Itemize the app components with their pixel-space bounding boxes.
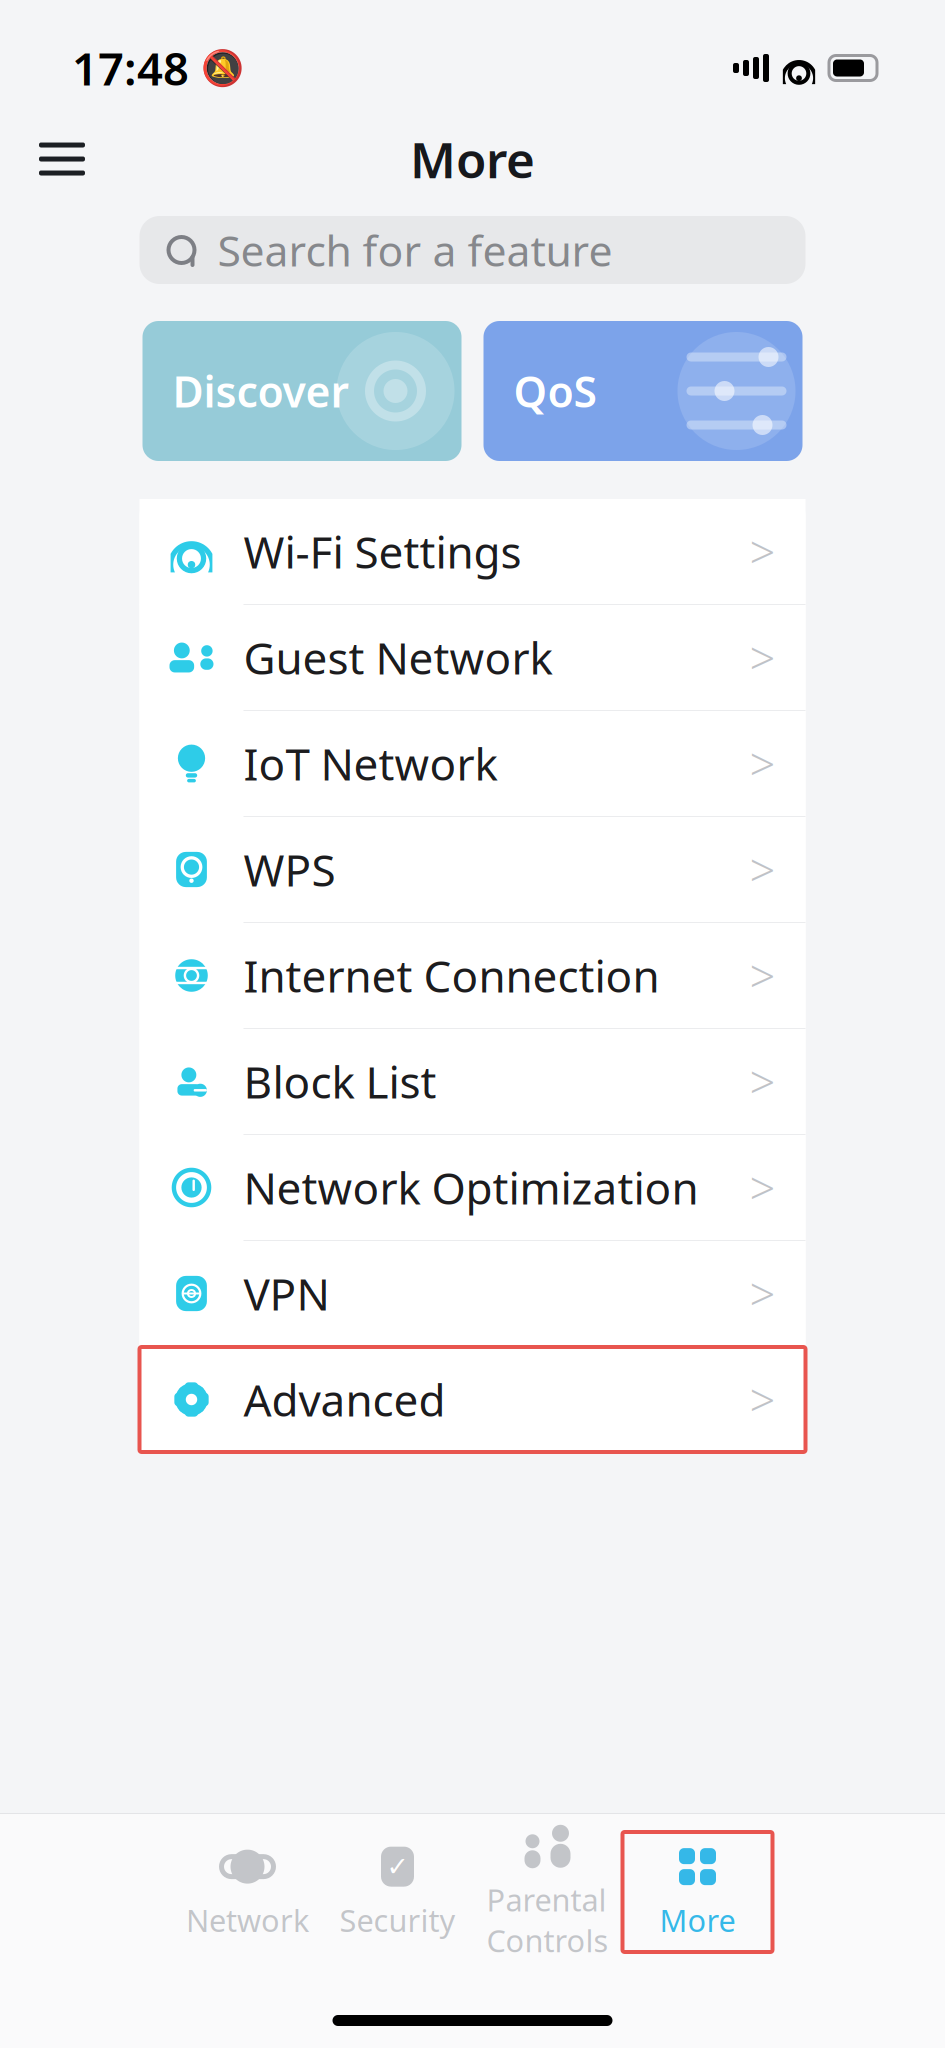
staticText: Block List <box>243 1052 436 1111</box>
staticText: Network Optimization <box>243 1158 698 1217</box>
staticText: Parental Controls <box>486 1879 608 1961</box>
staticText: > <box>749 1051 775 1112</box>
staticText: Network <box>186 1900 309 1940</box>
button[interactable]: Search for a feature <box>139 216 805 284</box>
staticText: Advanced <box>243 1370 445 1429</box>
staticText: > <box>749 521 775 582</box>
button[interactable]: Advanced <box>139 1347 805 1452</box>
button[interactable]: WPS <box>139 817 805 923</box>
staticText: ✓ <box>386 1851 408 1882</box>
staticText: Internet Connection <box>243 946 659 1005</box>
staticText: > <box>749 945 775 1006</box>
staticText: > <box>749 839 775 900</box>
staticText: > <box>749 1263 775 1324</box>
button[interactable]: Block List <box>139 1029 805 1135</box>
staticText: More <box>659 1900 735 1940</box>
button[interactable]: Wi-Fi Settings <box>139 499 805 605</box>
button[interactable]: QoS <box>483 321 802 461</box>
button[interactable]: Guest Network <box>139 605 805 711</box>
staticText: > <box>749 1369 775 1430</box>
staticText: > <box>749 627 775 688</box>
staticText: VPN <box>243 1264 329 1323</box>
button[interactable]: More <box>622 1832 772 1952</box>
staticText: IoT Network <box>243 734 497 793</box>
staticText: Guest Network <box>243 628 552 687</box>
button[interactable]: ✓ <box>322 1832 472 1952</box>
button[interactable]: VPN <box>139 1241 805 1347</box>
staticText: More <box>410 126 535 192</box>
staticText: Wi-Fi Settings <box>243 522 521 581</box>
button[interactable]: Parental Controls <box>472 1832 622 1952</box>
staticText: 17:48 <box>72 38 189 98</box>
staticText: 🔕 <box>201 48 244 88</box>
staticText: > <box>749 1157 775 1218</box>
button[interactable]: Discover <box>142 321 461 461</box>
staticText: Discover <box>172 363 349 419</box>
staticText: > <box>749 733 775 794</box>
button[interactable]: Internet Connection <box>139 923 805 1029</box>
button[interactable]: Menu <box>30 127 94 191</box>
staticText: Search for a feature <box>217 222 612 278</box>
staticText: WPS <box>243 840 335 899</box>
button[interactable]: Network Optimization <box>139 1135 805 1241</box>
button[interactable]: IoT Network <box>139 711 805 817</box>
button[interactable]: Network <box>172 1832 322 1952</box>
staticText: Security <box>339 1900 455 1940</box>
staticText: QoS <box>513 363 596 419</box>
